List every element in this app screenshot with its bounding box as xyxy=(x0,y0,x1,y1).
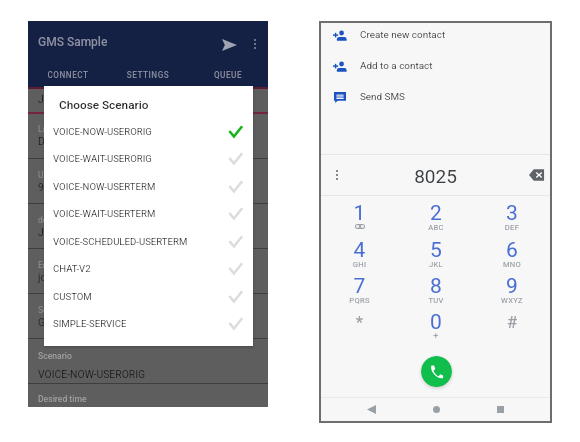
button[interactable]: Add to a contact xyxy=(321,51,550,81)
staticText: Desired time xyxy=(38,394,87,404)
button[interactable]: SETTINGS xyxy=(108,63,188,87)
button[interactable]: CUSTOM xyxy=(44,283,253,311)
staticText: John xyxy=(38,93,62,105)
staticText: 6 xyxy=(474,238,550,263)
button[interactable]: Back xyxy=(350,398,392,421)
button[interactable]: 2 xyxy=(398,195,474,231)
button[interactable]: 1 xyxy=(321,195,398,231)
button[interactable]: 4 xyxy=(321,232,398,268)
staticText: Scenario xyxy=(38,351,72,361)
staticText: User id xyxy=(38,170,65,180)
staticText: Jones-01 xyxy=(38,226,82,238)
staticText: 8 xyxy=(398,274,474,299)
staticText: QUEUE xyxy=(188,70,268,80)
staticText: Add to a contact xyxy=(360,60,433,72)
staticText: Gmscore xyxy=(38,316,81,328)
staticText: VOICE-SCHEDULED-USERTERM xyxy=(53,236,188,247)
staticText: 1 xyxy=(321,201,398,226)
staticText: SIMPLE-SERVICE xyxy=(53,318,127,329)
staticText: + xyxy=(398,331,474,342)
staticText: JKL xyxy=(398,260,474,269)
staticText: 9000001 xyxy=(38,181,80,193)
button[interactable]: QUEUE xyxy=(188,63,268,87)
staticText: CHAT-V2 xyxy=(53,263,91,274)
staticText: 8025 xyxy=(321,165,550,187)
staticText: Last name xyxy=(38,124,78,134)
button[interactable]: Call xyxy=(421,356,452,387)
button[interactable]: CONNECT xyxy=(28,63,108,87)
staticText: 7 xyxy=(321,274,398,299)
button[interactable]: More options xyxy=(324,162,350,188)
staticText: VOICE-WAIT-USERORIG xyxy=(53,153,152,164)
staticText: john@x.com xyxy=(38,271,97,283)
button[interactable]: 3 xyxy=(474,195,550,231)
button[interactable]: 8 xyxy=(398,268,474,304)
staticText: device id xyxy=(38,215,72,225)
staticText: Send SMS xyxy=(360,91,405,103)
staticText: VOICE-NOW-USERORIG xyxy=(38,368,146,380)
button[interactable]: VOICE-NOW-USERTERM xyxy=(44,173,253,201)
staticText: TUV xyxy=(398,296,474,305)
staticText: WXYZ xyxy=(474,296,550,305)
button[interactable]: # xyxy=(474,304,550,340)
button[interactable]: VOICE-WAIT-USERORIG xyxy=(44,145,253,173)
button[interactable]: VOICE-WAIT-USERTERM xyxy=(44,200,253,228)
staticText: 3 xyxy=(474,201,550,226)
button[interactable]: * xyxy=(321,304,398,340)
button[interactable]: Send SMS xyxy=(321,82,550,112)
staticText: DEF xyxy=(474,223,550,232)
staticText: Server xyxy=(38,305,62,315)
staticText: Choose Scenario xyxy=(59,98,149,112)
button[interactable]: Backspace xyxy=(524,162,550,188)
button[interactable]: VOICE-NOW-USERORIG xyxy=(44,118,253,146)
button[interactable]: Send xyxy=(215,31,243,59)
button[interactable]: 7 xyxy=(321,268,398,304)
button[interactable]: VOICE-SCHEDULED-USERTERM xyxy=(44,228,253,256)
button[interactable]: CHAT-V2 xyxy=(44,255,253,283)
staticText: GMS Sample xyxy=(38,35,108,49)
button[interactable]: 5 xyxy=(398,232,474,268)
staticText: 0 xyxy=(398,310,474,335)
staticText: VOICE-NOW-USERORIG xyxy=(53,126,152,137)
staticText: Create new contact xyxy=(360,29,446,41)
staticText: 9 xyxy=(474,274,550,299)
staticText: PQRS xyxy=(321,296,398,305)
button[interactable]: 6 xyxy=(474,232,550,268)
staticText: VOICE-WAIT-USERTERM xyxy=(53,208,156,219)
staticText: SETTINGS xyxy=(108,70,188,80)
staticText: Doe xyxy=(38,135,57,147)
button[interactable]: 0 xyxy=(398,304,474,340)
button[interactable]: Home xyxy=(415,398,457,421)
staticText: # xyxy=(474,312,550,332)
staticText: Email xyxy=(38,260,60,270)
button[interactable]: Create new contact xyxy=(321,20,550,50)
staticText: VOICE-NOW-USERTERM xyxy=(53,181,156,192)
staticText: MNO xyxy=(474,260,550,269)
button[interactable]: SIMPLE-SERVICE xyxy=(44,310,253,338)
staticText: CUSTOM xyxy=(53,291,92,302)
staticText: GHI xyxy=(321,260,398,269)
staticText: ABC xyxy=(398,223,474,232)
button[interactable]: Recent apps xyxy=(479,398,521,421)
staticText: CONNECT xyxy=(28,70,108,80)
button[interactable]: 9 xyxy=(474,268,550,304)
button[interactable]: More options xyxy=(242,31,268,57)
staticText: 4 xyxy=(321,238,398,263)
staticText: 5 xyxy=(398,238,474,263)
staticText: * xyxy=(321,312,398,332)
staticText: 2 xyxy=(398,201,474,226)
